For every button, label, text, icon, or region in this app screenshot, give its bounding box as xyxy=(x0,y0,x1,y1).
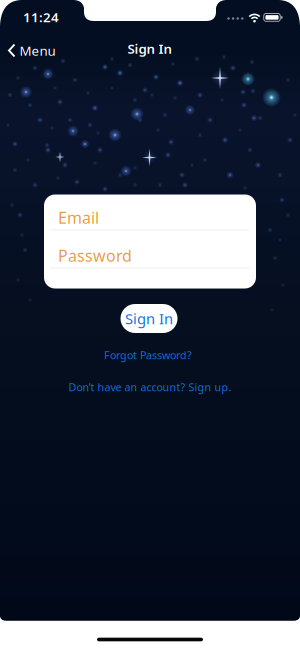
staticText: Sign In xyxy=(127,40,172,57)
button[interactable]: Forgot Password? xyxy=(104,348,192,362)
staticText: Don't have an account? Sign up. xyxy=(68,380,231,394)
staticText: Password xyxy=(58,245,132,266)
staticText: 11:24 xyxy=(23,8,59,26)
button[interactable]: Sign In xyxy=(120,304,177,333)
staticText: Forgot Password? xyxy=(104,348,192,362)
button[interactable]: Don't have an account? Sign up. xyxy=(68,380,231,394)
staticText: Sign In xyxy=(125,309,173,328)
staticText: Email xyxy=(58,207,99,228)
staticText: Menu xyxy=(19,42,55,59)
button[interactable]: Back to Menu xyxy=(0,0,60,70)
